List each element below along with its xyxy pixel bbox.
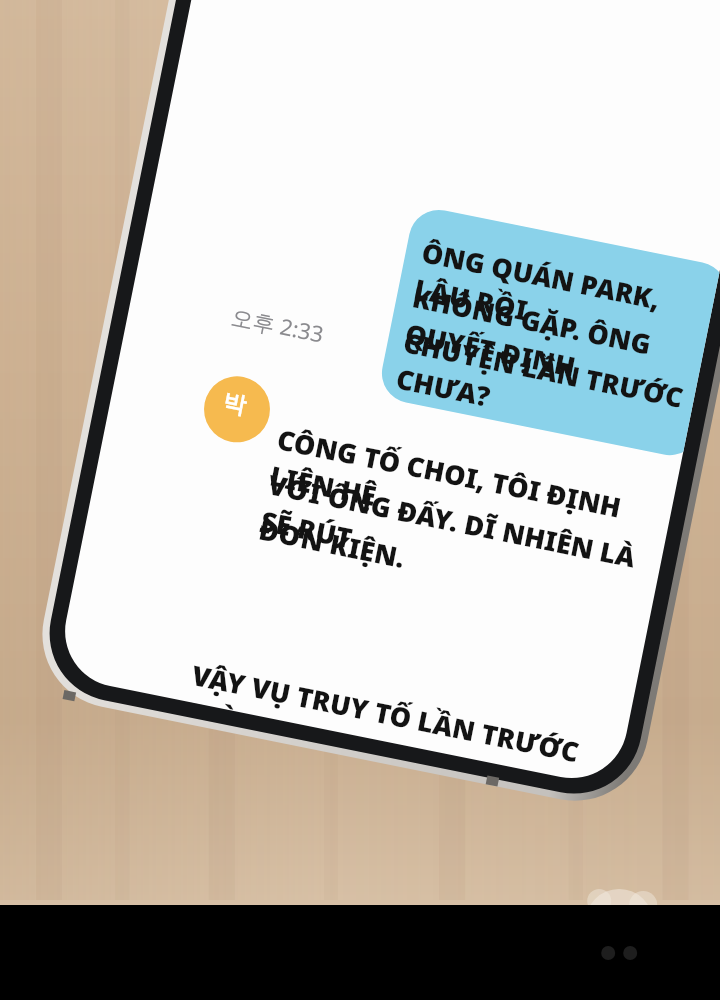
button[interactable]: Messaging conversation displayed on a ph… bbox=[0, 0, 720, 1000]
